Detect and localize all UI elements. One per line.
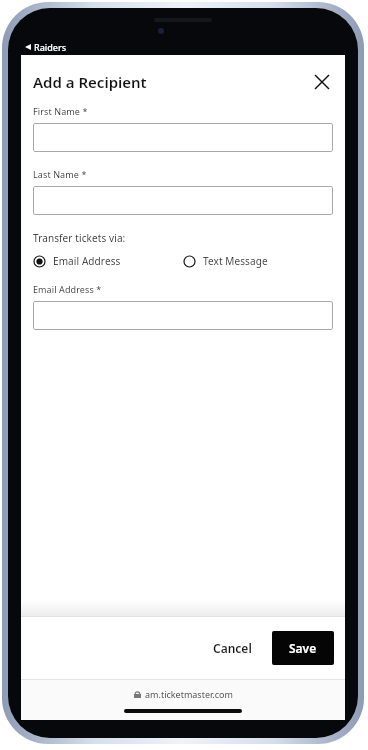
staticText: Save <box>289 640 317 656</box>
button[interactable]: Cancel <box>205 634 260 662</box>
staticText: Add a Recipient <box>33 72 147 92</box>
button[interactable] <box>33 123 333 152</box>
staticText: First Name * <box>33 105 88 117</box>
staticText: Cancel <box>213 640 252 656</box>
staticText: Email Address * <box>33 283 102 295</box>
staticText: Text Message <box>203 254 268 268</box>
staticText: Raiders <box>34 41 67 53</box>
button[interactable]: Text Message <box>183 252 333 270</box>
button[interactable]: Close <box>309 69 335 95</box>
staticText: Email Address <box>53 254 121 268</box>
button[interactable] <box>33 301 333 330</box>
staticText: Last Name * <box>33 168 87 180</box>
staticText: am.ticketmaster.com <box>145 688 233 700</box>
button[interactable]: Email Address <box>33 252 183 270</box>
button[interactable] <box>33 186 333 215</box>
staticText: Transfer tickets via: <box>33 231 126 245</box>
button[interactable]: Save <box>272 631 334 665</box>
